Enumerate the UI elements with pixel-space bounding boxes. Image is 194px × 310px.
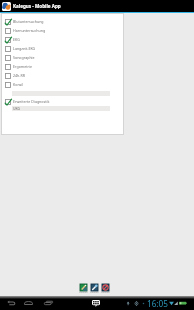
staticText: Blutuntersuchung <box>13 19 44 24</box>
button[interactable]: UKG <box>12 106 110 111</box>
button[interactable]: Edit note <box>80 284 87 291</box>
button[interactable]: Back <box>7 298 16 307</box>
staticText: Langzeit-EKG <box>13 46 36 51</box>
button[interactable]: EKG <box>2 35 123 44</box>
staticText: Notizen <box>90 291 99 294</box>
staticText: UKG <box>13 106 20 111</box>
button[interactable]: Home <box>24 298 33 307</box>
button[interactable]: Blutuntersuchung <box>2 17 123 26</box>
button[interactable]: App logo <box>2 2 11 11</box>
staticText: 24h-RR <box>13 73 25 78</box>
staticText: Ergometrie <box>13 64 32 69</box>
staticText: Notizen <box>79 291 88 294</box>
button[interactable]: Draw <box>91 284 98 291</box>
button[interactable]: Ergometrie <box>2 62 123 71</box>
button[interactable]: Konsil <box>2 80 123 89</box>
staticText: Notizen <box>101 291 110 294</box>
staticText: Harnuntersuchung <box>13 28 46 33</box>
staticText: Sonographie <box>13 55 35 60</box>
button[interactable]: Langzeit-EKG <box>2 44 123 53</box>
staticText: Kalegus - Mobile App <box>13 3 61 9</box>
button[interactable]: Blocked <box>102 284 109 291</box>
button[interactable]: Sonographie <box>2 53 123 62</box>
staticText: EKG <box>13 37 20 42</box>
staticText: 16:05 <box>147 298 168 309</box>
button[interactable]: Erweiterte Diagnostik <box>2 97 123 106</box>
button[interactable]: Harnuntersuchung <box>2 26 123 35</box>
button[interactable]: 24h-RR <box>2 71 123 80</box>
staticText: Konsil <box>13 82 24 87</box>
staticText: Erweiterte Diagnostik <box>13 99 50 104</box>
button[interactable]: Recent apps <box>44 298 53 307</box>
button[interactable]: All apps <box>92 300 100 307</box>
